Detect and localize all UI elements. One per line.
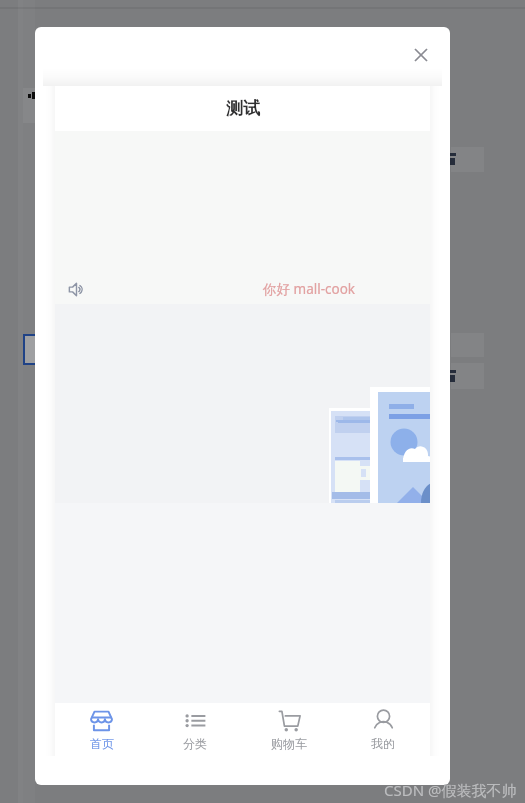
- staticText: 你好 mall-cook: [263, 280, 356, 298]
- button[interactable]: 我的: [336, 703, 430, 756]
- staticText: 测试: [226, 98, 260, 119]
- staticText: 我的: [371, 736, 395, 751]
- staticText: CSDN @假装我不帅: [384, 780, 517, 800]
- button[interactable]: 首页: [55, 703, 148, 756]
- button[interactable]: 分类: [148, 703, 242, 756]
- button[interactable]: 购物车: [242, 703, 336, 756]
- staticText: 首页: [90, 736, 114, 751]
- staticText: 购物车: [271, 736, 307, 751]
- staticText: 分类: [183, 736, 207, 751]
- button[interactable]: Close: [403, 37, 439, 73]
